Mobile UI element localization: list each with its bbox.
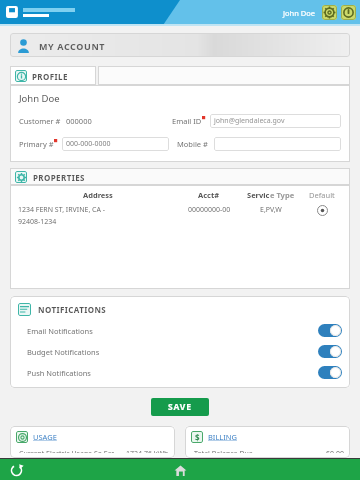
staticText: Push Notifications bbox=[27, 368, 91, 378]
staticText: Address bbox=[83, 190, 113, 200]
button[interactable]: 000-000-0000 bbox=[62, 137, 169, 151]
button[interactable]: Email Notifications bbox=[18, 324, 342, 337]
staticText: Servic bbox=[247, 190, 270, 200]
staticText: john@glendaleca.gov bbox=[214, 116, 285, 126]
button[interactable]: Refresh bbox=[8, 462, 24, 478]
staticText: John Doe bbox=[19, 92, 60, 105]
staticText: E,PV,W bbox=[260, 205, 282, 215]
staticText: Default bbox=[309, 190, 335, 200]
staticText: USAGE bbox=[33, 432, 57, 442]
button[interactable]: Budget Notifications bbox=[18, 345, 342, 358]
staticText: Acct# bbox=[198, 190, 220, 200]
staticText: John Doe bbox=[283, 8, 316, 18]
button[interactable]: Push Notifications bbox=[18, 366, 342, 379]
button[interactable] bbox=[98, 66, 350, 85]
staticText: Budget Notifications bbox=[27, 347, 100, 357]
staticText: 1234 FERN ST, IRVINE, CA - bbox=[18, 205, 106, 215]
staticText: SAVE bbox=[168, 401, 192, 413]
staticText: Current Electric Usage So Far bbox=[19, 449, 115, 453]
staticText: Primary # bbox=[19, 139, 54, 149]
button[interactable]: USAGE bbox=[10, 426, 175, 458]
button[interactable]: Settings bbox=[322, 5, 337, 20]
staticText: BILLING bbox=[208, 432, 237, 442]
staticText: Customer # bbox=[19, 116, 61, 126]
staticText: 92408-1234 bbox=[18, 217, 57, 227]
staticText: 1724.76 kWh bbox=[126, 449, 169, 453]
button[interactable]: SAVE bbox=[151, 398, 209, 416]
staticText: Email ID bbox=[172, 116, 202, 126]
staticText: PROFILE bbox=[32, 71, 68, 82]
staticText: 000-000-0000 bbox=[66, 139, 111, 149]
button[interactable]: Default property bbox=[317, 205, 328, 216]
staticText: Mobile # bbox=[177, 139, 208, 149]
button[interactable]: MY ACCOUNT bbox=[10, 33, 350, 57]
staticText: Total Balance Due bbox=[194, 449, 253, 453]
staticText: 00000000-00 bbox=[188, 205, 231, 215]
button[interactable]: Home bbox=[172, 462, 188, 478]
button[interactable]: PROPERTIES bbox=[10, 168, 350, 185]
button[interactable]: PROFILE bbox=[10, 66, 96, 85]
staticText: e Type bbox=[270, 190, 295, 200]
staticText: Email Notifications bbox=[27, 326, 93, 336]
button[interactable] bbox=[214, 137, 341, 151]
staticText: NOTIFICATIONS bbox=[38, 304, 107, 315]
staticText: $ bbox=[195, 432, 200, 443]
button[interactable]: 1234 FERN ST, IRVINE, CA - bbox=[18, 205, 342, 227]
staticText: 000000 bbox=[66, 116, 92, 126]
button[interactable]: john@glendaleca.gov bbox=[210, 114, 341, 128]
staticText: PROPERTIES bbox=[33, 172, 85, 183]
button[interactable]: $ bbox=[185, 426, 350, 458]
staticText: MY ACCOUNT bbox=[39, 40, 106, 52]
button[interactable]: Log out bbox=[341, 5, 356, 20]
staticText: $0.00 bbox=[326, 449, 344, 453]
